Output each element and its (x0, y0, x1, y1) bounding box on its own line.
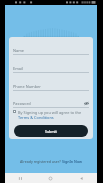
button[interactable]: Submit (14, 125, 88, 137)
button[interactable]: Home (35, 173, 66, 183)
staticText: Submit (45, 129, 57, 134)
staticText: By Signing up you will agree to the (18, 110, 82, 115)
staticText: Password (13, 101, 31, 106)
button[interactable]: SignIn Now (62, 159, 83, 164)
staticText: Terms & Conditions (18, 115, 54, 120)
staticText: Name (13, 48, 24, 53)
staticText: Email (13, 66, 23, 71)
button[interactable]: Recents (5, 173, 35, 183)
staticText: Already registered user? (20, 159, 62, 164)
staticText: Phone Number (13, 84, 41, 89)
button[interactable]: By Signing up you will agree to the (13, 110, 93, 120)
button[interactable]: Back (66, 173, 97, 183)
